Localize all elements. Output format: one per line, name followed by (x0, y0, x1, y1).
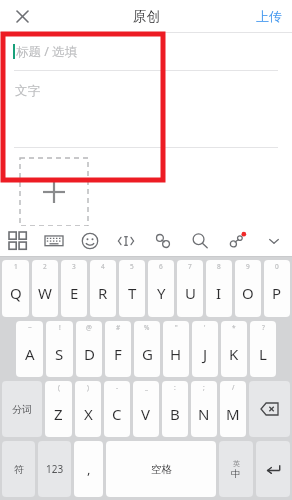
button[interactable]: 符 (2, 441, 35, 497)
button[interactable]: 上传 (256, 8, 282, 24)
button[interactable]: / (220, 381, 246, 437)
button[interactable]: ) (75, 381, 101, 437)
staticText: O (242, 283, 254, 303)
button[interactable]: 1 (2, 260, 29, 317)
staticText: ; (203, 383, 205, 392)
staticText: / (232, 383, 235, 392)
staticText: # (116, 323, 121, 332)
button[interactable]: ' (192, 321, 218, 377)
button[interactable]: Grid (0, 226, 36, 256)
button[interactable]: 分词 (2, 381, 42, 437)
button[interactable]: : (162, 381, 188, 437)
button[interactable]: Language (219, 441, 253, 497)
staticText: 9 (246, 262, 250, 271)
button[interactable]: Voice (218, 226, 255, 256)
staticText: D (84, 344, 95, 364)
staticText: ) (87, 383, 89, 392)
staticText: 1 (14, 262, 18, 271)
staticText: V (141, 404, 151, 424)
button[interactable]: 2 (32, 260, 58, 317)
button[interactable]: 6 (148, 260, 174, 317)
staticText: 上传 (256, 8, 282, 24)
button[interactable]: Attach (144, 226, 181, 256)
staticText: * (232, 323, 236, 332)
staticText: Y (157, 283, 166, 303)
button[interactable]: 123 (38, 441, 71, 497)
staticText: 文字 (15, 83, 40, 99)
staticText: 123 (46, 462, 64, 476)
staticText: @ (86, 323, 92, 332)
staticText: - (116, 383, 119, 392)
staticText: N (198, 404, 210, 424)
button[interactable]: 文字 (0, 71, 292, 147)
button[interactable]: 9 (235, 260, 261, 317)
button[interactable]: Backspace (249, 381, 290, 437)
staticText: G (142, 344, 153, 364)
staticText: P (272, 283, 282, 303)
button[interactable]: * (221, 321, 247, 377)
staticText: H (170, 344, 182, 364)
button[interactable]: 0 (264, 260, 290, 317)
staticText: J (203, 344, 208, 364)
button[interactable]: Add image (20, 158, 88, 226)
staticText: : (174, 383, 176, 392)
staticText: B (170, 404, 180, 424)
button[interactable]: 8 (206, 260, 232, 317)
staticText: W (38, 283, 52, 303)
staticText: 3 (72, 262, 76, 271)
button[interactable]: Format (108, 226, 144, 256)
staticText: % (144, 323, 150, 332)
staticText: 7 (188, 262, 192, 271)
button[interactable]: , (74, 441, 103, 497)
button[interactable]: - (104, 381, 130, 437)
button[interactable]: Keyboard (36, 226, 72, 256)
button[interactable]: @ (76, 321, 102, 377)
staticText: ? (262, 323, 265, 332)
staticText: , (87, 460, 91, 478)
staticText: 空格 (151, 463, 172, 476)
staticText: 标题 / 选填 (16, 43, 78, 60)
staticText: K (229, 344, 239, 364)
button[interactable]: Enter (256, 441, 290, 497)
staticText: E (70, 283, 79, 303)
button[interactable]: Close (8, 2, 36, 30)
staticText: 0 (275, 262, 279, 271)
staticText: 8 (217, 262, 221, 271)
button[interactable]: 空格 (106, 441, 216, 497)
button[interactable]: 3 (61, 260, 87, 317)
staticText: Z (54, 404, 63, 424)
staticText: I (216, 283, 222, 303)
staticText: L (259, 344, 267, 364)
button[interactable]: " (163, 321, 189, 377)
staticText: X (84, 404, 93, 424)
button[interactable]: ( (45, 381, 72, 437)
button[interactable]: ? (250, 321, 276, 377)
staticText: ' (204, 323, 206, 332)
button[interactable]: ~ (16, 321, 43, 377)
button[interactable]: Emoji (72, 226, 108, 256)
button[interactable]: ! (46, 321, 73, 377)
staticText: ! (59, 323, 61, 332)
button[interactable]: % (134, 321, 160, 377)
staticText: 5 (130, 262, 134, 271)
button[interactable]: Search (181, 226, 218, 256)
button[interactable]: 7 (177, 260, 203, 317)
button[interactable]: ; (191, 381, 217, 437)
button[interactable]: 标题 / 选填 (0, 33, 292, 70)
staticText: 中 (231, 468, 241, 480)
staticText: ~ (28, 323, 32, 332)
staticText: ( (58, 383, 60, 392)
staticText: 符 (14, 463, 24, 476)
staticText: F (114, 344, 122, 364)
button[interactable]: _ (133, 381, 159, 437)
button[interactable]: 4 (90, 260, 116, 317)
staticText: 英 (233, 459, 240, 468)
staticText: S (55, 344, 64, 364)
staticText: M (226, 404, 240, 424)
staticText: 6 (159, 262, 163, 271)
staticText: U (185, 283, 196, 303)
button[interactable]: 5 (119, 260, 145, 317)
button[interactable]: Collapse (255, 226, 292, 256)
button[interactable]: # (105, 321, 131, 377)
staticText: Q (10, 283, 22, 303)
